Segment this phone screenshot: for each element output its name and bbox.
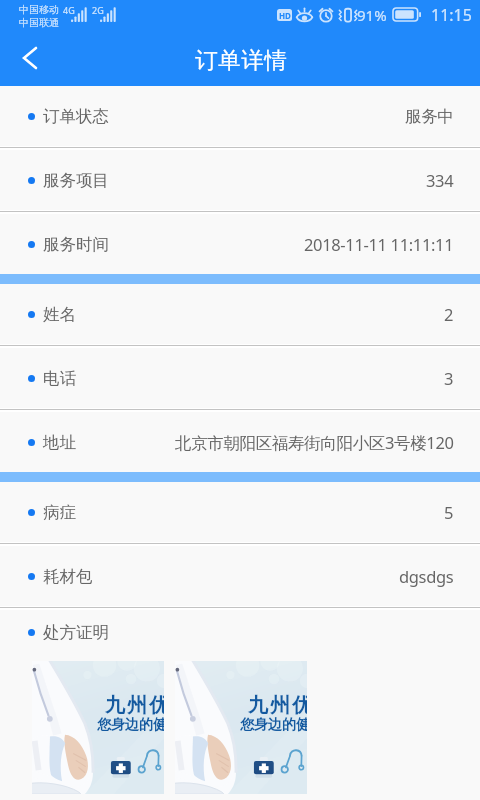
staticText: 334 bbox=[426, 169, 454, 191]
staticText: 11:15 bbox=[431, 4, 472, 26]
button[interactable]: Prescription image bbox=[32, 661, 164, 794]
staticText: 姓名 bbox=[43, 304, 76, 325]
staticText: 4G bbox=[63, 4, 75, 16]
staticText: 您身边的健康顾问 bbox=[240, 716, 307, 734]
staticText: 91% bbox=[357, 5, 387, 25]
staticText: 2018-11-11 11:11:11 bbox=[304, 233, 454, 255]
staticText: 中国移动 bbox=[19, 3, 59, 16]
button[interactable]: 耗材包 bbox=[0, 546, 480, 606]
button[interactable]: 姓名 bbox=[0, 284, 480, 344]
staticText: 北京市朝阳区福寿街向阳小区3号楼120 bbox=[175, 431, 454, 454]
staticText: 地址 bbox=[43, 432, 76, 453]
staticText: 您身边的健康顾问 bbox=[97, 716, 164, 734]
staticText: 病症 bbox=[43, 502, 76, 523]
staticText: 服务项目 bbox=[43, 170, 109, 191]
staticText: dgsdgs bbox=[399, 565, 454, 587]
staticText: 中国联通 bbox=[19, 16, 59, 29]
button[interactable]: 服务项目 bbox=[0, 150, 480, 210]
staticText: 电话 bbox=[43, 368, 76, 389]
staticText: 九州优护 bbox=[104, 693, 164, 718]
staticText: 服务时间 bbox=[43, 234, 109, 255]
staticText: 2G bbox=[92, 4, 104, 16]
staticText: 九州优护 bbox=[247, 693, 307, 718]
button[interactable]: Prescription image bbox=[175, 661, 307, 794]
staticText: 订单状态 bbox=[43, 106, 109, 127]
button[interactable]: 处方证明 bbox=[0, 610, 480, 661]
staticText: 订单详情 bbox=[195, 46, 288, 74]
button[interactable]: 订单状态 bbox=[0, 86, 480, 146]
staticText: 服务中 bbox=[405, 106, 454, 127]
button[interactable]: 电话 bbox=[0, 348, 480, 408]
button[interactable]: 服务时间 bbox=[0, 214, 480, 274]
button[interactable]: Back bbox=[6, 34, 54, 82]
staticText: 耗材包 bbox=[43, 566, 93, 587]
staticText: 处方证明 bbox=[43, 622, 109, 643]
staticText: HD bbox=[279, 10, 291, 21]
button[interactable]: 病症 bbox=[0, 482, 480, 542]
button[interactable]: 地址 bbox=[0, 412, 480, 472]
staticText: 5 bbox=[444, 501, 454, 523]
staticText: 3 bbox=[444, 367, 454, 389]
staticText: 2 bbox=[444, 303, 454, 325]
